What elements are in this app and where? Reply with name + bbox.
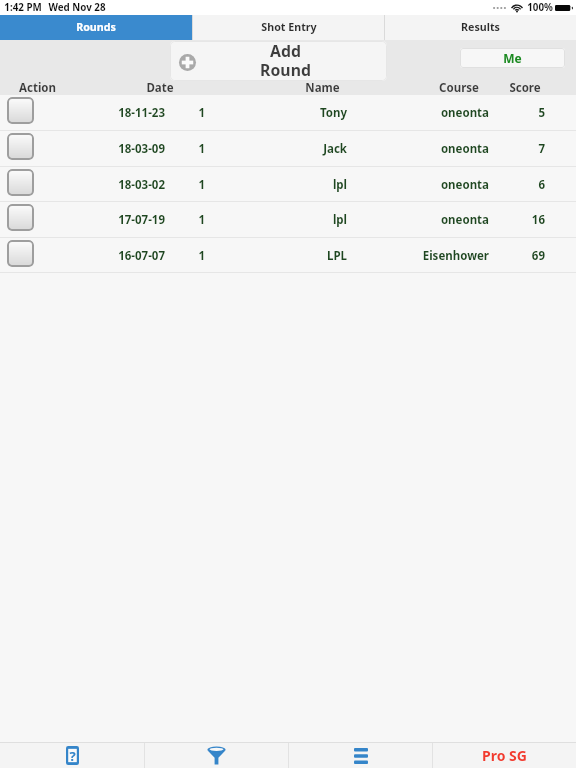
staticText: LPL	[327, 248, 347, 264]
staticText: 1	[198, 248, 205, 264]
staticText: Date	[146, 80, 174, 96]
staticText: 16-07-07	[118, 248, 165, 264]
staticText: Tony	[319, 105, 347, 121]
button[interactable]: Edit round	[0, 95, 576, 131]
staticText: Me	[503, 50, 522, 66]
staticText: 1	[198, 177, 205, 193]
staticText: Eisenhower	[422, 248, 489, 264]
staticText: oneonta	[440, 105, 489, 121]
staticText: lpl	[332, 212, 347, 228]
staticText: oneonta	[440, 212, 489, 228]
button[interactable]: Pro SG	[433, 743, 576, 768]
staticText: Wed Nov 28	[48, 1, 106, 14]
button[interactable]: Filter	[145, 743, 288, 768]
button[interactable]: Rounds	[0, 15, 192, 40]
staticText: Shot Entry	[261, 20, 317, 35]
button[interactable]: Me	[460, 48, 565, 68]
staticText: 5	[538, 105, 545, 121]
staticText: 16	[531, 212, 545, 228]
button[interactable]: Edit round	[0, 167, 576, 202]
button[interactable]: Results	[385, 15, 576, 40]
staticText: 7	[538, 141, 545, 157]
staticText: 18-11-23	[118, 105, 165, 121]
staticText: 6	[538, 177, 545, 193]
staticText: oneonta	[440, 141, 489, 157]
staticText: 1	[198, 105, 205, 121]
staticText: 1:42 PM	[4, 1, 42, 14]
button[interactable]: Help	[0, 743, 144, 768]
staticText: Course	[439, 80, 479, 96]
staticText: 18-03-09	[118, 141, 165, 157]
staticText: Action	[19, 80, 56, 96]
staticText: 18-03-02	[118, 177, 165, 193]
staticText: 69	[531, 248, 545, 264]
staticText: 1	[198, 212, 205, 228]
staticText: Results	[461, 20, 500, 35]
button[interactable]: Menu	[289, 743, 432, 768]
button[interactable]: Add Round	[170, 41, 387, 81]
staticText: 100%	[527, 1, 553, 14]
staticText: Jack	[323, 141, 347, 157]
staticText: Pro SG	[482, 746, 527, 765]
staticText: oneonta	[440, 177, 489, 193]
button[interactable]: Edit round	[0, 238, 576, 273]
staticText: Rounds	[76, 20, 116, 35]
button[interactable]: Edit round	[7, 169, 34, 196]
button[interactable]: Shot Entry	[193, 15, 384, 40]
button[interactable]: Edit round	[0, 202, 576, 238]
button[interactable]: Edit round	[7, 204, 34, 231]
button[interactable]: Edit round	[0, 131, 576, 167]
staticText: 17-07-19	[118, 212, 165, 228]
staticText: 1	[198, 141, 205, 157]
staticText: Name	[305, 80, 340, 96]
button[interactable]: Edit round	[7, 240, 34, 267]
staticText: Score	[509, 80, 541, 96]
button[interactable]: Edit round	[7, 97, 34, 124]
button[interactable]: Edit round	[7, 133, 34, 160]
staticText: ?	[69, 747, 76, 765]
staticText: Add Round	[260, 41, 311, 80]
staticText: lpl	[332, 177, 347, 193]
